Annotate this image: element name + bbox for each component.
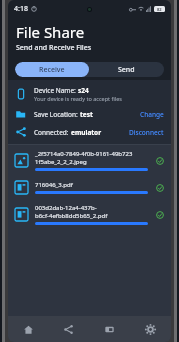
button[interactable]: Image file xyxy=(15,145,164,176)
other: Completed xyxy=(156,184,164,192)
other: PDF file xyxy=(15,181,28,194)
other: Image file xyxy=(15,154,28,167)
button[interactable]: Settings xyxy=(130,316,171,342)
other: Device xyxy=(15,88,27,100)
staticText: 1f5abe_2_2_2.jpeg xyxy=(35,158,87,166)
button[interactable]: Home xyxy=(8,316,48,342)
other: Completed xyxy=(156,157,164,165)
other: Folder xyxy=(15,108,27,120)
button[interactable]: PDF file xyxy=(15,176,164,199)
staticText: File Share xyxy=(16,22,85,42)
staticText: 716046_3.pdf xyxy=(35,181,73,189)
button[interactable]: PDF file xyxy=(15,199,164,230)
staticText: Receive xyxy=(39,65,65,75)
staticText: b6cf-4efbb8dd5b65_2.pdf xyxy=(35,212,108,220)
button[interactable]: Files xyxy=(89,316,130,342)
staticText: Device Name: xyxy=(34,86,78,95)
staticText: Send and Receive Files xyxy=(16,43,92,53)
staticText: 82 xyxy=(157,7,162,12)
other: PDF file xyxy=(15,208,28,221)
staticText: s24 xyxy=(78,86,89,95)
staticText: Your device is ready to accept files xyxy=(34,95,122,102)
staticText: Change xyxy=(140,110,164,119)
button[interactable]: Share xyxy=(15,123,164,141)
button[interactable]: Share xyxy=(48,316,89,342)
button[interactable]: Folder xyxy=(15,105,164,123)
staticText: 4:18 xyxy=(14,4,28,14)
staticText: emulator xyxy=(71,128,102,137)
staticText: Connected: xyxy=(34,128,71,137)
staticText: 003d2dab-12a4-437b- xyxy=(35,204,97,212)
staticText: Save Location: xyxy=(34,110,80,119)
other: Share xyxy=(15,126,27,138)
staticText: Send xyxy=(118,65,135,75)
button[interactable]: Device xyxy=(15,83,164,105)
button[interactable]: Receive xyxy=(15,62,89,77)
button[interactable]: Send xyxy=(89,62,164,77)
staticText: Disconnect xyxy=(129,128,164,137)
staticText: _2f5714a0-7849-4f0b-9161-49b723 xyxy=(35,150,133,158)
staticText: test xyxy=(80,110,93,119)
other: Completed xyxy=(156,211,164,219)
